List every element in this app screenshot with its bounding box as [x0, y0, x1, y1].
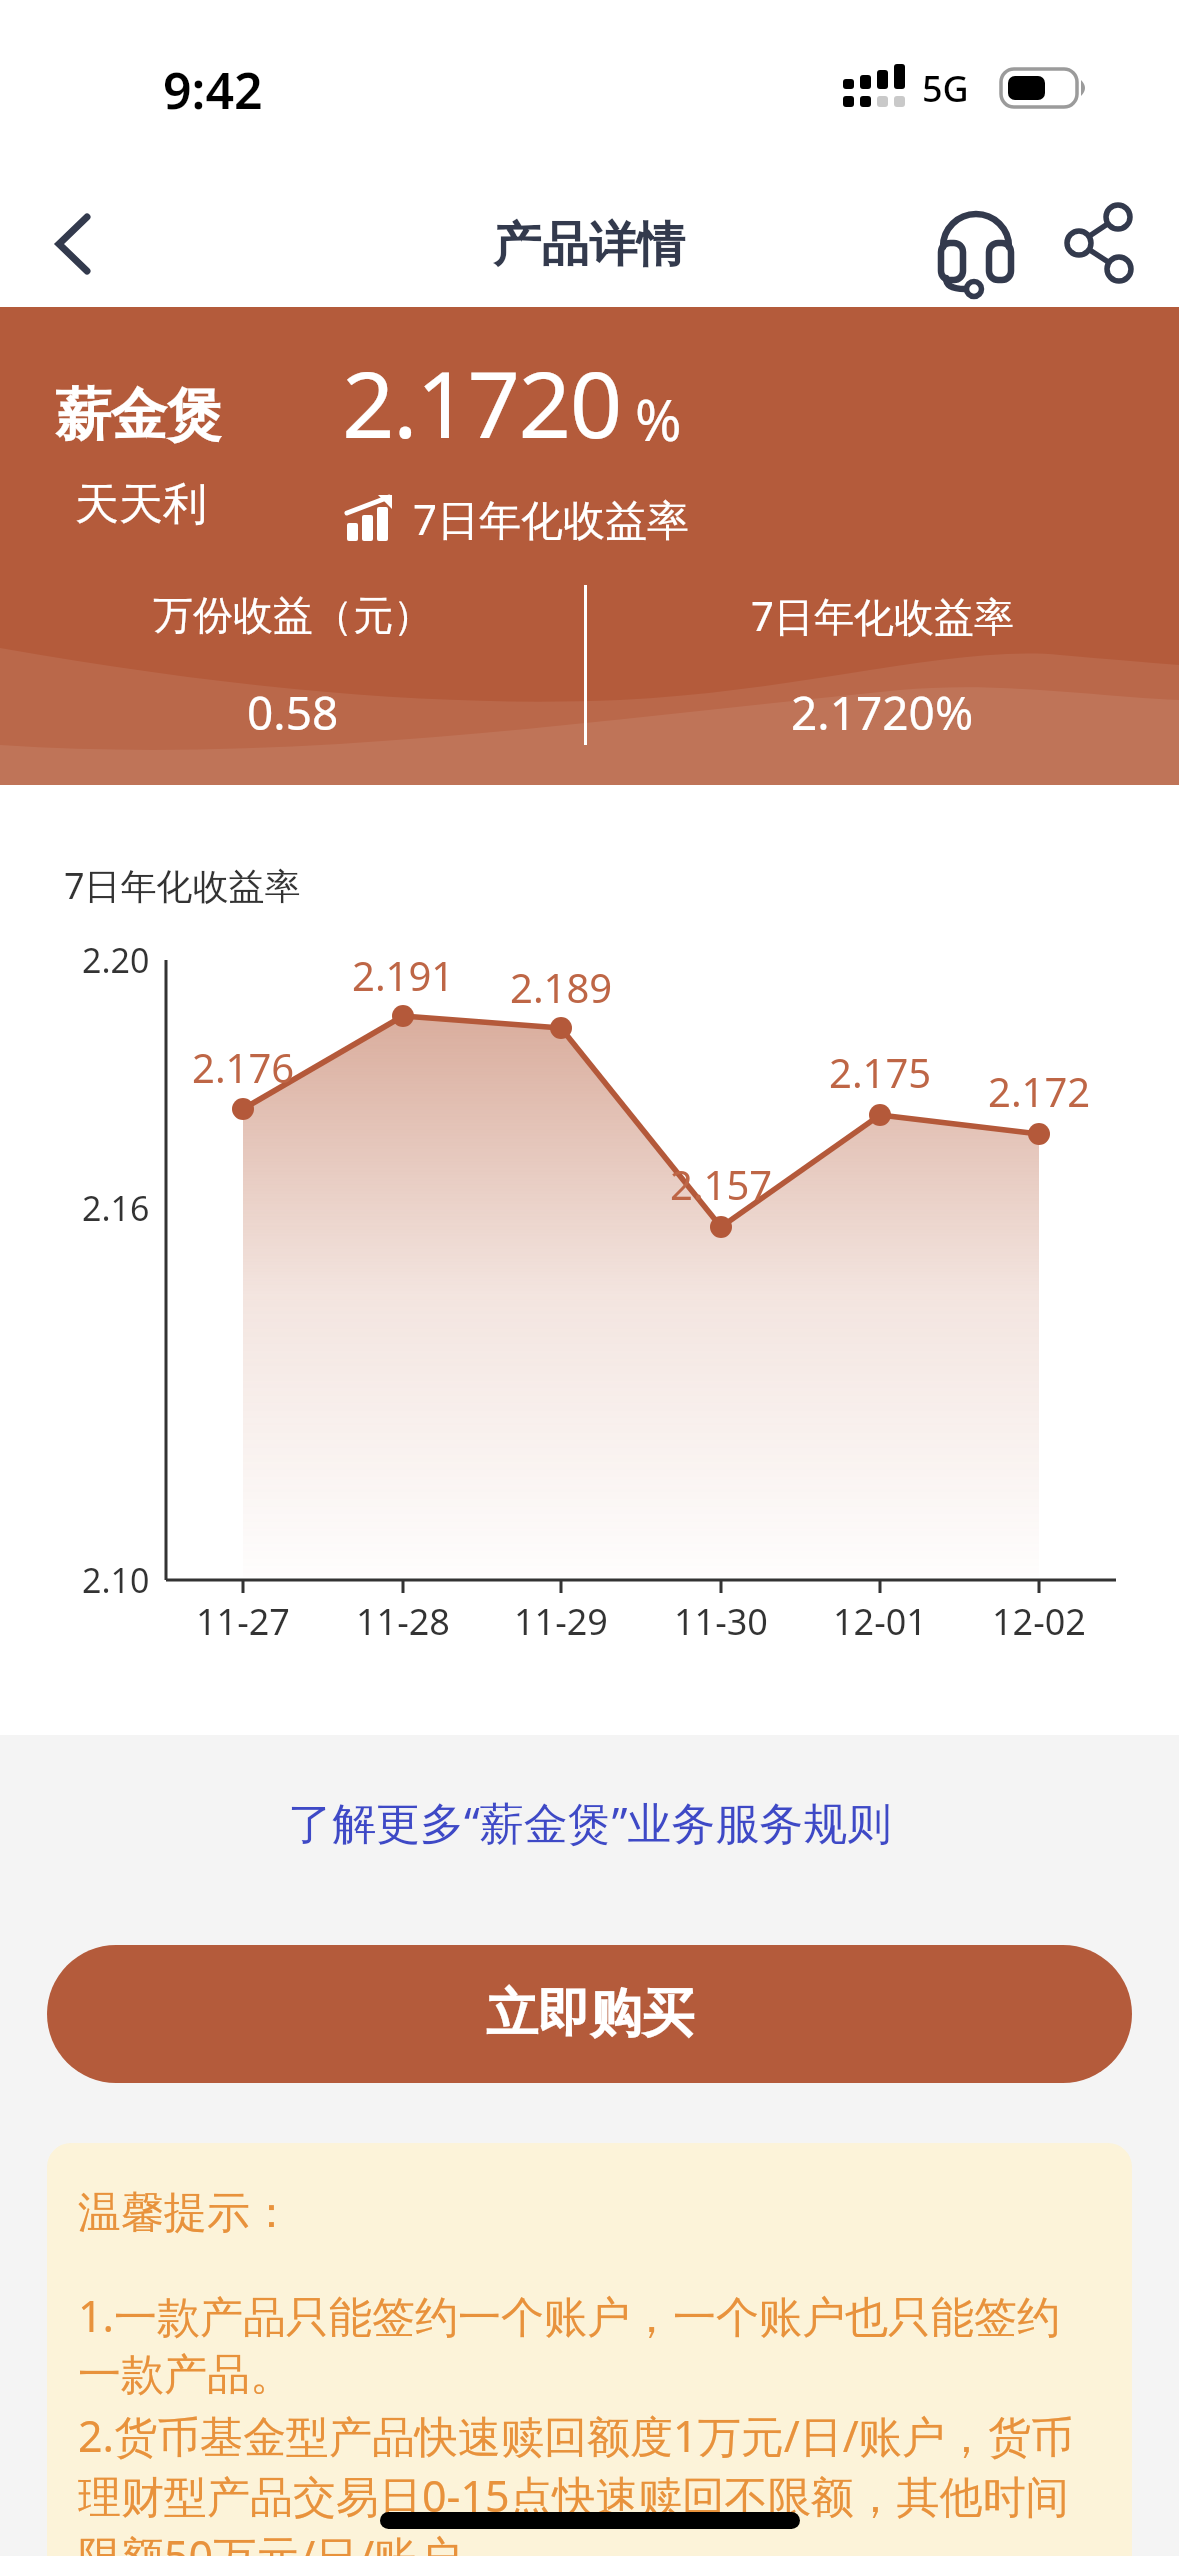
staticText: 11-30: [674, 1597, 768, 1646]
staticText: 0.58: [247, 681, 339, 744]
staticText: 薪金煲: [55, 380, 223, 451]
button[interactable]: [30, 189, 120, 279]
staticText: 7日年化收益率: [751, 588, 1014, 643]
staticText: 12-01: [833, 1597, 927, 1646]
staticText: 2.1720: [342, 340, 621, 465]
button[interactable]: [1058, 198, 1148, 288]
staticText: 2.货币基金型产品快速赎回额度1万元/日/账户，货币: [78, 2406, 1074, 2465]
button[interactable]: [931, 198, 1021, 288]
staticText: 2.176: [192, 1040, 295, 1094]
staticText: 2.10: [82, 1557, 150, 1603]
staticText: 理财型产品交易日0-15点快速赎回不限额，其他时间: [78, 2466, 1069, 2525]
staticText: 了解更多“薪金煲”业务服务规则: [288, 1792, 892, 1852]
staticText: 12-02: [992, 1597, 1086, 1646]
staticText: 万份收益（元）: [153, 590, 433, 640]
staticText: 2.1720%: [791, 681, 974, 744]
staticText: 11-27: [196, 1597, 290, 1646]
staticText: 产品详情: [493, 215, 685, 275]
staticText: 7日年化收益率: [413, 490, 690, 547]
button[interactable]: 了解更多“薪金煲”业务服务规则: [240, 1791, 940, 1853]
staticText: 2.189: [510, 960, 613, 1014]
staticText: 2.16: [82, 1185, 150, 1231]
staticText: 温馨提示：: [78, 2186, 293, 2240]
staticText: %: [635, 381, 682, 457]
staticText: 天天利: [75, 477, 207, 532]
staticText: 7日年化收益率: [64, 861, 301, 910]
staticText: 11-29: [514, 1597, 608, 1646]
staticText: 2.191: [352, 948, 455, 1002]
staticText: 11-28: [356, 1597, 450, 1646]
staticText: 1.一款产品只能签约一个账户，一个账户也只能签约: [78, 2286, 1061, 2345]
staticText: 2.175: [829, 1045, 932, 1099]
staticText: 限额50万元/日/账户: [78, 2526, 461, 2556]
staticText: 5G: [922, 64, 969, 113]
staticText: 立即购买: [486, 1981, 694, 2047]
staticText: 2.20: [82, 937, 150, 983]
button[interactable]: 立即购买: [47, 1945, 1132, 2083]
staticText: 一款产品。: [78, 2348, 293, 2402]
staticText: 2.157: [670, 1157, 773, 1211]
staticText: 2.172: [988, 1064, 1091, 1118]
staticText: 9:42: [163, 56, 263, 116]
